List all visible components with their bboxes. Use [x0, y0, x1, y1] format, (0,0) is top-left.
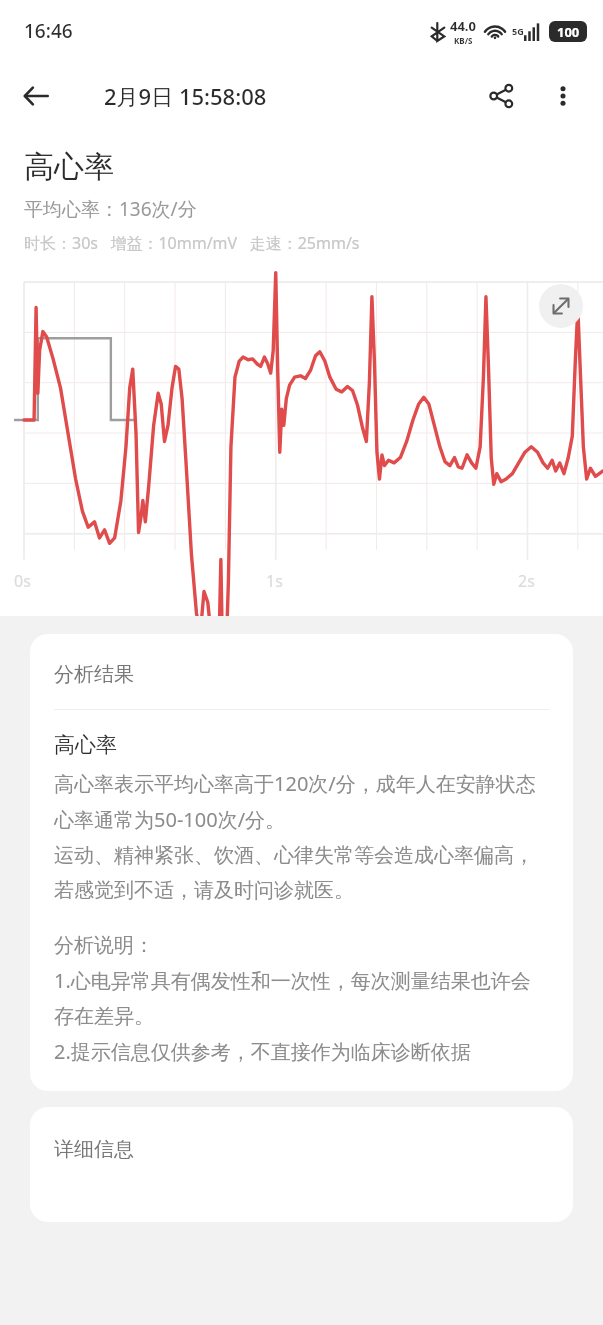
button[interactable]: Share: [477, 72, 525, 120]
staticText: 0s: [14, 570, 31, 592]
staticText: 高心率: [54, 732, 117, 758]
button[interactable]: More options: [541, 74, 585, 118]
button[interactable]: 详细信息: [30, 1107, 573, 1222]
button[interactable]: 分析结果: [30, 634, 573, 1091]
staticText: 分析结果: [54, 662, 134, 687]
staticText: 高心率表示平均心率高于120次/分，成年人在安静状态心率通常为50-100次/分…: [54, 770, 549, 903]
staticText: 16:46: [24, 18, 73, 44]
staticText: 1s: [266, 570, 283, 592]
staticText: 分析说明： 1.心电异常具有偶发性和一次性，每次测量结果也许会存在差异。 2.提…: [54, 933, 549, 1065]
staticText: 100: [557, 23, 580, 41]
button[interactable]: Back: [12, 72, 60, 120]
staticText: 2月9日 15:58:08: [104, 81, 267, 111]
staticText: 高心率: [24, 148, 114, 186]
staticText: 5G: [512, 25, 524, 37]
button[interactable]: Expand chart: [539, 284, 583, 328]
staticText: 44.0: [450, 17, 476, 35]
staticText: 时长：30s 增益：10mm/mV 走速：25mm/s: [24, 232, 360, 254]
staticText: 详细信息: [54, 1137, 134, 1162]
staticText: 平均心率：136次/分: [24, 196, 197, 222]
staticText: KB/S: [454, 35, 473, 46]
staticText: 2s: [518, 570, 535, 592]
